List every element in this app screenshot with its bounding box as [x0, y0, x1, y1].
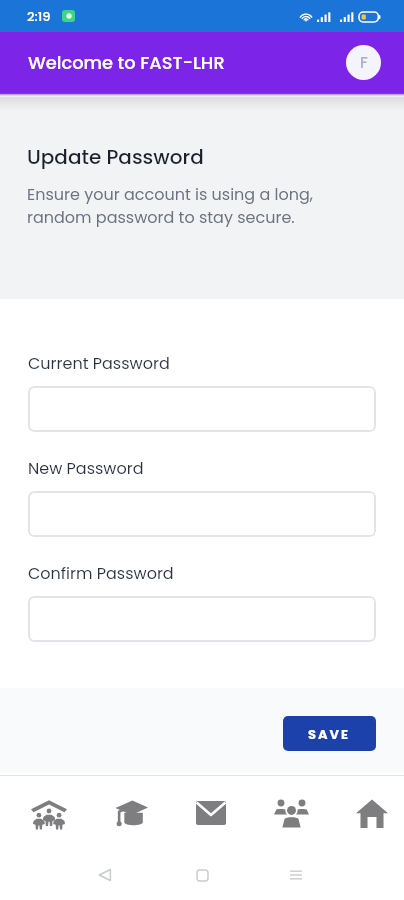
staticText: Update Password [27, 143, 204, 171]
button[interactable]: Community [19, 789, 79, 839]
button[interactable]: Home [344, 789, 400, 838]
button[interactable]: Mail [184, 791, 238, 835]
button[interactable]: Academics [99, 790, 160, 837]
staticText: SAVE [308, 725, 351, 743]
button[interactable]: SAVE [283, 716, 376, 751]
staticText: Current Password [28, 352, 170, 374]
staticText: Welcome to FAST-LHR [28, 50, 225, 75]
button[interactable]: Profile [346, 45, 381, 80]
staticText: F [360, 52, 368, 73]
button[interactable] [28, 596, 376, 642]
staticText: Ensure your account is using a long, ran… [27, 183, 313, 228]
staticText: New Password [28, 457, 144, 479]
button[interactable]: Back [85, 855, 125, 895]
button[interactable] [28, 386, 376, 432]
staticText: 2:19 [27, 7, 51, 25]
button[interactable]: Recent apps [276, 855, 316, 895]
button[interactable]: Groups [262, 788, 321, 839]
button[interactable] [28, 491, 376, 537]
staticText: Confirm Password [28, 562, 174, 584]
button[interactable]: Home [182, 855, 222, 895]
